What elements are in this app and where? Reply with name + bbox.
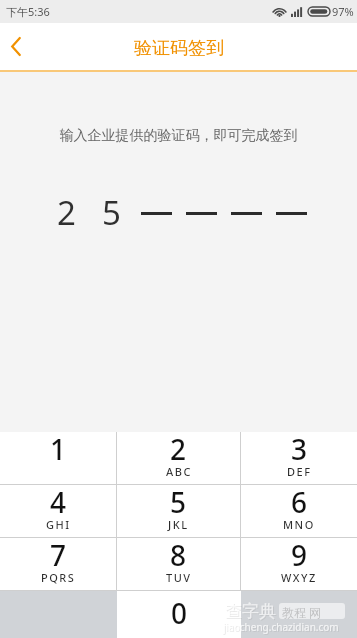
- staticText: 教程 网: [282, 604, 322, 620]
- button[interactable]: 5: [117, 485, 240, 537]
- staticText: 0: [171, 594, 188, 632]
- staticText: WXYZ: [281, 570, 317, 585]
- staticText: 9: [291, 536, 308, 574]
- staticText: PQRS: [41, 570, 76, 585]
- staticText: 查字典: [226, 602, 277, 623]
- button[interactable]: 6: [241, 485, 357, 537]
- staticText: 1: [50, 430, 67, 468]
- staticText: ABC: [166, 464, 192, 479]
- staticText: 下午5:36: [6, 4, 50, 19]
- staticText: JKL: [168, 517, 189, 532]
- button[interactable]: 4: [0, 485, 116, 537]
- staticText: GHI: [46, 517, 71, 532]
- staticText: jiaocheng.chazidian.com: [224, 621, 340, 635]
- staticText: TUV: [166, 570, 192, 585]
- staticText: 2: [170, 430, 187, 468]
- staticText: jiaocheng.chazidian.com: [223, 620, 339, 634]
- staticText: 4: [50, 483, 67, 521]
- staticText: 5: [102, 190, 121, 230]
- staticText: 7: [50, 536, 67, 574]
- staticText: DEF: [287, 464, 312, 479]
- button[interactable]: 8: [117, 538, 240, 590]
- staticText: 5: [170, 483, 187, 521]
- staticText: 3: [291, 430, 308, 468]
- button[interactable]: 7: [0, 538, 116, 590]
- staticText: 验证码签到: [134, 37, 224, 60]
- staticText: 2: [57, 190, 76, 230]
- button[interactable]: Back: [0, 30, 32, 62]
- staticText: 输入企业提供的验证码，即可完成签到: [0, 127, 357, 145]
- staticText: 8: [170, 536, 187, 574]
- staticText: 6: [291, 483, 308, 521]
- staticText: 97%: [332, 4, 354, 19]
- staticText: 查字典: [225, 601, 276, 622]
- staticText: MNO: [283, 517, 315, 532]
- button[interactable]: 0: [117, 591, 241, 638]
- button[interactable]: Delete: [241, 591, 357, 638]
- button[interactable]: 1: [0, 432, 116, 484]
- button[interactable]: 9: [241, 538, 357, 590]
- button[interactable]: 2: [117, 432, 240, 484]
- button[interactable]: 3: [241, 432, 357, 484]
